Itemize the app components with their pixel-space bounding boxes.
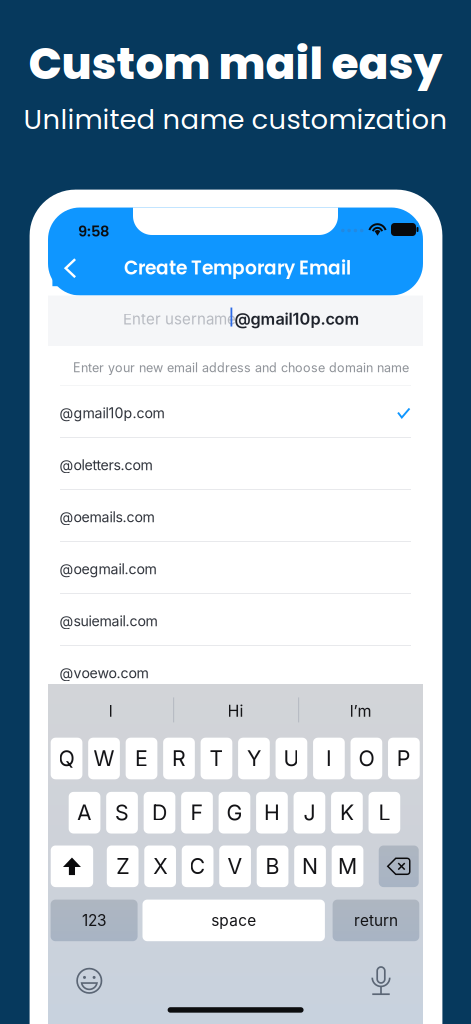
- staticText: @gmail10p.com: [234, 309, 359, 329]
- button[interactable]: @gmail10p.com: [48, 386, 423, 438]
- staticText: @gmail10p.com: [59, 404, 164, 422]
- staticText: space: [211, 911, 256, 930]
- button[interactable]: return: [333, 900, 419, 941]
- staticText: return: [354, 911, 398, 930]
- button[interactable]: Emoji keyboard: [67, 959, 111, 1003]
- button[interactable]: B: [257, 845, 288, 887]
- staticText: @voewo.com: [59, 664, 148, 682]
- button[interactable]: O: [350, 738, 382, 779]
- staticText: R: [172, 746, 186, 771]
- staticText: J: [303, 800, 315, 826]
- staticText: E: [135, 746, 148, 771]
- button[interactable]: 123: [51, 900, 138, 941]
- staticText: I: [108, 701, 112, 721]
- button[interactable]: I: [48, 689, 173, 733]
- staticText: T: [209, 746, 223, 771]
- button[interactable]: Delete: [379, 845, 419, 887]
- button[interactable]: X: [144, 845, 176, 887]
- staticText: W: [93, 746, 114, 771]
- staticText: X: [153, 853, 167, 879]
- button[interactable]: @oegmail.com: [48, 542, 423, 594]
- staticText: @oletters.com: [59, 456, 152, 474]
- staticText: Custom mail easy: [28, 33, 442, 94]
- button[interactable]: C: [182, 845, 213, 887]
- staticText: 9:58: [78, 221, 109, 241]
- button[interactable]: @oemails.com: [48, 490, 423, 542]
- staticText: Enter username: [123, 310, 236, 328]
- button[interactable]: S: [106, 792, 138, 833]
- staticText: Unlimited name customization: [23, 100, 447, 139]
- staticText: C: [190, 853, 206, 879]
- staticText: Q: [59, 746, 75, 771]
- button[interactable]: R: [163, 738, 195, 779]
- staticText: Create Temporary Email: [124, 255, 351, 281]
- staticText: Hi: [227, 701, 243, 721]
- button[interactable]: N: [294, 845, 326, 887]
- staticText: @oemails.com: [59, 508, 154, 526]
- staticText: P: [397, 746, 411, 771]
- button[interactable]: V: [219, 845, 251, 887]
- button[interactable]: E: [126, 738, 157, 779]
- button[interactable]: Hi: [173, 689, 298, 733]
- button[interactable]: Back: [52, 250, 88, 286]
- button[interactable]: @suiemail.com: [48, 594, 423, 646]
- staticText: @oegmail.com: [59, 560, 156, 578]
- staticText: S: [115, 800, 129, 826]
- button[interactable]: Y: [238, 738, 270, 779]
- button[interactable]: D: [144, 792, 175, 833]
- button[interactable]: space: [142, 900, 325, 941]
- button[interactable]: Dictation: [359, 958, 403, 1002]
- button[interactable]: P: [388, 738, 420, 779]
- staticText: U: [283, 746, 299, 771]
- staticText: M: [338, 853, 357, 879]
- staticText: F: [190, 800, 203, 826]
- staticText: N: [302, 853, 318, 879]
- staticText: I’m: [349, 701, 371, 721]
- staticText: K: [340, 800, 354, 826]
- staticText: B: [266, 853, 280, 879]
- staticText: V: [228, 853, 243, 879]
- button[interactable]: T: [201, 738, 232, 779]
- button[interactable]: W: [88, 738, 120, 779]
- button[interactable]: @oletters.com: [48, 438, 423, 490]
- staticText: Enter your new email address and choose …: [73, 360, 409, 375]
- button[interactable]: U: [276, 738, 307, 779]
- staticText: Y: [247, 746, 261, 771]
- staticText: A: [77, 800, 92, 826]
- staticText: D: [152, 800, 167, 826]
- staticText: G: [226, 800, 242, 826]
- button[interactable]: F: [181, 792, 213, 833]
- button[interactable]: L: [368, 792, 400, 833]
- button[interactable]: M: [332, 845, 363, 887]
- button[interactable]: I: [313, 738, 345, 779]
- button[interactable]: G: [219, 792, 250, 833]
- button[interactable]: Shift: [51, 845, 93, 887]
- staticText: L: [378, 800, 390, 826]
- staticText: O: [358, 746, 374, 771]
- staticText: I: [326, 746, 332, 771]
- button[interactable]: A: [69, 792, 100, 833]
- button[interactable]: H: [256, 792, 288, 833]
- staticText: H: [264, 800, 280, 826]
- staticText: @suiemail.com: [59, 612, 157, 630]
- button[interactable]: K: [331, 792, 363, 833]
- button[interactable]: @voewo.com: [48, 646, 423, 698]
- staticText: Z: [116, 853, 129, 879]
- button[interactable]: Q: [51, 738, 82, 779]
- staticText: 123: [82, 911, 106, 930]
- button[interactable]: J: [294, 792, 325, 833]
- button[interactable]: Z: [107, 845, 138, 887]
- button[interactable]: I’m: [298, 689, 423, 733]
